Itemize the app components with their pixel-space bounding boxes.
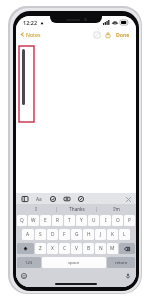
button[interactable]: J: [95, 229, 106, 240]
staticText: Aa: [36, 196, 42, 203]
button[interactable]: T: [64, 215, 75, 226]
staticText: I: [105, 217, 107, 224]
staticText: Q: [20, 217, 24, 224]
button[interactable]: Close keyboard: [124, 195, 132, 203]
staticText: M: [110, 245, 115, 252]
button[interactable]: Dictation: [124, 272, 132, 280]
staticText: T: [68, 217, 71, 224]
staticText: V: [75, 245, 78, 252]
button[interactable]: Compose: [92, 30, 101, 39]
staticText: I'm: [113, 206, 120, 212]
button[interactable]: Table: [21, 195, 29, 203]
button[interactable]: Share: [103, 30, 112, 39]
staticText: D: [51, 231, 55, 238]
staticText: F: [63, 231, 66, 238]
button[interactable]: Y: [76, 215, 87, 226]
button[interactable]: Checklist: [49, 195, 57, 203]
staticText: Notes: [26, 31, 41, 38]
staticText: A: [26, 231, 30, 238]
staticText: U: [92, 217, 96, 224]
button[interactable]: X: [47, 243, 58, 254]
button[interactable]: Backspace: [119, 243, 135, 254]
button[interactable]: I: [16, 204, 56, 214]
staticText: L: [123, 231, 126, 238]
staticText: return: [115, 260, 128, 266]
button[interactable]: Z: [35, 243, 46, 254]
staticText: X: [51, 245, 54, 252]
button[interactable]: W: [28, 215, 39, 226]
button[interactable]: E: [40, 215, 51, 226]
staticText: H: [87, 231, 91, 238]
button[interactable]: 123: [17, 257, 41, 268]
staticText: Y: [80, 217, 83, 224]
staticText: I: [35, 206, 37, 212]
button[interactable]: Notes: [16, 29, 45, 40]
button[interactable]: K: [107, 229, 118, 240]
staticText: B: [87, 245, 91, 252]
button[interactable]: F: [59, 229, 70, 240]
button[interactable]: D: [47, 229, 58, 240]
staticText: N: [99, 245, 103, 252]
staticText: G: [75, 231, 79, 238]
button[interactable]: B: [83, 243, 94, 254]
staticText: E: [44, 217, 47, 224]
staticText: J: [100, 231, 102, 238]
button[interactable]: O: [112, 215, 123, 226]
button[interactable]: I: [100, 215, 111, 226]
staticText: S: [39, 231, 42, 238]
button[interactable]: U: [88, 215, 99, 226]
staticText: 12:22: [23, 19, 38, 26]
button[interactable]: A: [22, 229, 34, 240]
button[interactable]: L: [119, 229, 130, 240]
button[interactable]: Thanks: [57, 204, 96, 214]
button[interactable]: Markup: [77, 195, 85, 203]
button[interactable]: N: [95, 243, 106, 254]
button[interactable]: Emoji: [20, 272, 28, 280]
button[interactable]: Camera: [63, 195, 71, 203]
staticText: O: [116, 217, 120, 224]
button[interactable]: V: [71, 243, 82, 254]
staticText: Done: [116, 31, 130, 38]
button[interactable]: Shift: [17, 243, 34, 254]
button[interactable]: R: [52, 215, 63, 226]
staticText: W: [31, 217, 36, 224]
staticText: Thanks: [69, 206, 85, 212]
staticText: 123: [25, 260, 33, 266]
button[interactable]: H: [83, 229, 94, 240]
button[interactable]: Aa: [35, 195, 43, 203]
button[interactable]: G: [71, 229, 82, 240]
button[interactable]: return: [107, 257, 135, 268]
button[interactable]: P: [124, 215, 135, 226]
staticText: C: [63, 245, 67, 252]
button[interactable]: C: [59, 243, 70, 254]
button[interactable]: I'm: [97, 204, 136, 214]
button[interactable]: Q: [17, 215, 27, 226]
staticText: space: [68, 260, 80, 266]
staticText: P: [128, 217, 131, 224]
staticText: R: [56, 217, 59, 224]
button[interactable]: M: [107, 243, 118, 254]
staticText: K: [111, 231, 114, 238]
button[interactable]: space: [42, 257, 106, 268]
button[interactable]: S: [35, 229, 46, 240]
button[interactable]: Done: [114, 29, 132, 40]
staticText: Z: [39, 245, 42, 252]
